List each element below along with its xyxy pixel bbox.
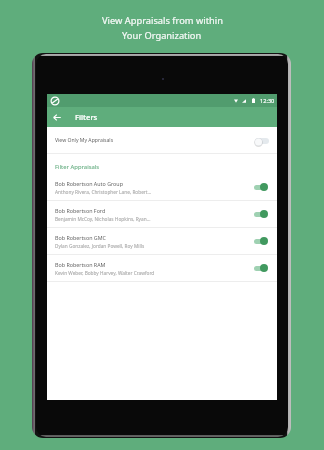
button[interactable]: Bob Robertson RAM [47,255,277,281]
button[interactable]: Toggle filter on [254,263,268,273]
staticText: View Appraisals from within [102,14,223,27]
button[interactable]: Toggle filter on [254,236,268,246]
staticText: Filters [75,112,98,122]
button[interactable]: View Only My Appraisals [47,128,277,153]
staticText: View Only My Appraisals [55,137,114,144]
staticText: Bob Robertson RAM [55,261,106,268]
button[interactable]: Bob Robertson Auto Group [47,174,277,200]
staticText: Your Organization [122,29,202,42]
staticText: Filter Appraisals [55,163,100,171]
button[interactable]: Bob Robertson Ford [47,201,277,227]
staticText: Dylan Gonzalez, Jordan Powell, Roy Mills [55,243,145,249]
staticText: Bob Robertson GMC [55,234,106,241]
staticText: 12:30 [260,97,275,105]
button[interactable]: Bob Robertson GMC [47,228,277,254]
staticText: Bob Robertson Ford [55,207,106,214]
button[interactable]: Back [47,107,67,127]
staticText: Anthony Rivera, Christopher Lane, Robert… [55,189,152,195]
staticText: Benjamin McCoy, Nicholas Hopkins, Ryan..… [55,216,151,222]
button[interactable]: Toggle filter on [254,209,268,219]
button[interactable]: View only my appraisals toggle [254,136,268,146]
staticText: Bob Robertson Auto Group [55,180,123,187]
button[interactable]: Toggle filter on [254,182,268,192]
staticText: Kevin Weber, Bobby Harvey, Walter Crawfo… [55,270,155,276]
